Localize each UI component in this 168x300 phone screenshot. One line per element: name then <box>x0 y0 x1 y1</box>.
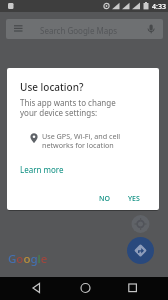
staticText: Use location? <box>20 80 84 94</box>
button[interactable] <box>6 19 163 39</box>
staticText: YES <box>128 194 140 204</box>
button[interactable] <box>127 237 154 264</box>
staticText: NO <box>99 194 110 204</box>
staticText: This app wants to change your device set… <box>20 97 116 119</box>
staticText: Google <box>8 251 48 267</box>
staticText: Learn more <box>20 164 64 175</box>
button[interactable] <box>20 277 60 300</box>
button[interactable]: NO <box>92 189 121 206</box>
staticText: Use GPS, Wi-Fi, and cell networks for lo… <box>42 131 121 150</box>
button[interactable]: Learn more <box>20 164 64 175</box>
button[interactable]: YES <box>123 189 154 206</box>
staticText: Search Google Maps <box>40 25 117 36</box>
button[interactable] <box>65 277 105 300</box>
staticText: 4:33 <box>152 2 166 12</box>
button[interactable] <box>112 277 152 300</box>
